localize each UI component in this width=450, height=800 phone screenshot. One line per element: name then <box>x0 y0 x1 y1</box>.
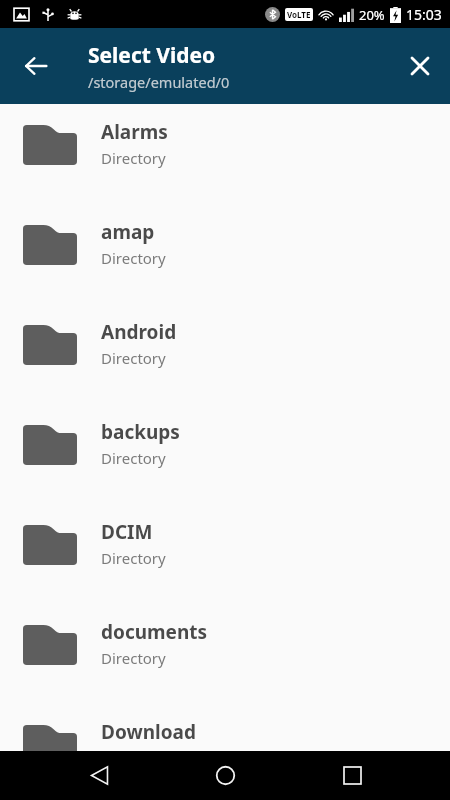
button[interactable]: amap <box>0 204 450 304</box>
button[interactable]: DCIM <box>0 504 450 604</box>
staticText: 15:03 <box>406 5 442 24</box>
button[interactable]: Close <box>394 40 446 92</box>
staticText: Directory <box>101 248 166 268</box>
staticText: Directory <box>101 548 166 568</box>
button[interactable]: documents <box>0 604 450 704</box>
button[interactable]: Back <box>8 38 64 94</box>
staticText: documents <box>101 619 208 645</box>
button[interactable]: Download <box>0 704 450 751</box>
button[interactable]: Alarms <box>0 104 450 204</box>
button[interactable]: Back <box>71 751 127 800</box>
staticText: 20% <box>359 6 385 24</box>
staticText: DCIM <box>101 519 153 545</box>
staticText: Directory <box>101 348 166 368</box>
staticText: Download <box>101 719 196 745</box>
button[interactable]: Home <box>197 751 253 800</box>
button[interactable]: Recent apps <box>324 751 380 800</box>
staticText: Directory <box>101 148 166 168</box>
staticText: Alarms <box>101 119 168 145</box>
staticText: Directory <box>101 648 166 668</box>
staticText: amap <box>101 219 155 245</box>
staticText: Directory <box>101 448 166 468</box>
staticText: VoLTE <box>287 9 311 20</box>
staticText: backups <box>101 419 180 445</box>
button[interactable]: backups <box>0 404 450 504</box>
staticText: /storage/emulated/0 <box>88 72 230 92</box>
staticText: Android <box>101 319 177 345</box>
button[interactable]: Android <box>0 304 450 404</box>
staticText: Select Video <box>88 41 216 70</box>
